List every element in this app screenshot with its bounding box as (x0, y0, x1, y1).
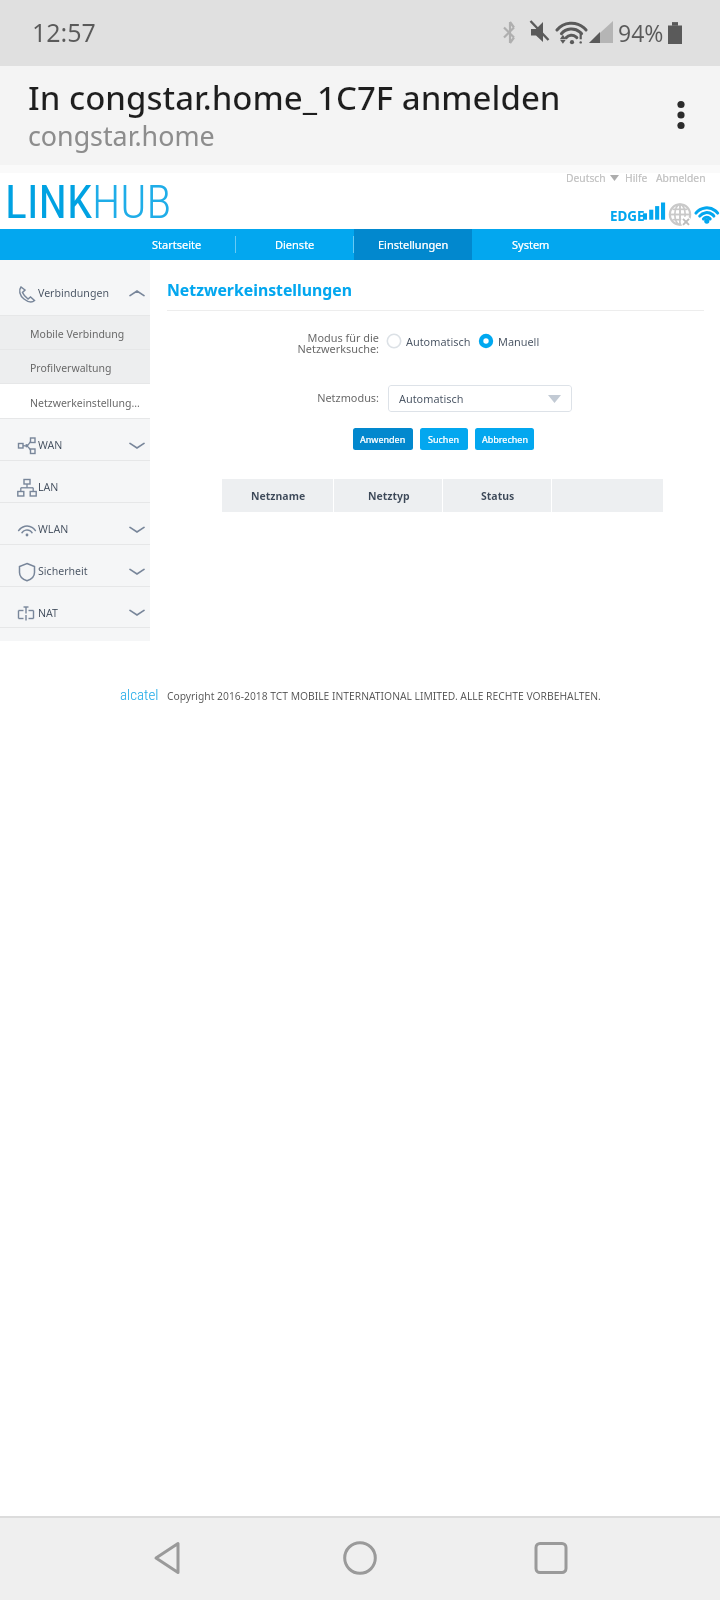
button[interactable]: System (472, 229, 590, 260)
button[interactable]: LAN (0, 461, 150, 503)
staticText: Netzwerkeinstellungen (167, 279, 352, 301)
staticText: Einstellungen (378, 237, 449, 252)
button[interactable]: Profilverwaltung (0, 350, 150, 384)
staticText: LAN (38, 480, 59, 494)
staticText: alcatel (120, 686, 159, 704)
staticText: Dienste (275, 237, 315, 252)
button[interactable]: Automatisch (386, 333, 471, 349)
staticText: HUB (92, 175, 172, 229)
button[interactable]: Mobile Verbindung (0, 316, 150, 350)
staticText: System (512, 237, 550, 252)
staticText: Status (481, 489, 515, 503)
staticText: Sicherheit (38, 564, 88, 578)
button[interactable]: Automatisch (388, 385, 572, 412)
button[interactable]: NAT (0, 587, 150, 628)
staticText: Anwenden (360, 433, 406, 445)
button[interactable]: Deutsch (566, 171, 606, 185)
staticText: Netzmodus: (289, 390, 379, 405)
button[interactable]: Abbrechen (475, 428, 534, 450)
staticText: Netzname (251, 489, 306, 503)
staticText: NAT (38, 606, 58, 620)
button[interactable]: Back (120, 1516, 216, 1600)
button[interactable]: WLAN (0, 503, 150, 545)
button[interactable]: Anwenden (353, 428, 413, 450)
staticText: Netztyp (368, 489, 410, 503)
staticText: WAN (38, 438, 63, 452)
button[interactable]: Verbindungen (0, 260, 150, 316)
staticText: congstar.home (28, 117, 215, 154)
staticText: Profilverwaltung (30, 361, 112, 375)
button[interactable]: More options (651, 86, 711, 146)
staticText: 94% (618, 17, 664, 48)
button[interactable]: Startseite (118, 229, 236, 260)
staticText: Suchen (428, 433, 460, 445)
staticText: Mobile Verbindung (30, 327, 125, 341)
button[interactable]: Dienste (236, 229, 354, 260)
button[interactable]: Abmelden (656, 171, 706, 185)
staticText: Netzwerkeinstellung… (30, 396, 140, 410)
button[interactable]: Netzwerkeinstellung… (0, 384, 150, 419)
staticText: Manuell (498, 334, 540, 349)
staticText: Verbindungen (38, 286, 109, 300)
button[interactable]: Hilfe (625, 171, 648, 185)
button[interactable]: WAN (0, 419, 150, 461)
staticText: Automatisch (406, 334, 471, 349)
button[interactable]: Sicherheit (0, 545, 150, 587)
button[interactable]: Manuell (478, 333, 540, 349)
staticText: EDGE (610, 207, 645, 225)
staticText: Automatisch (399, 391, 464, 406)
button[interactable]: Recent apps (503, 1516, 599, 1600)
button[interactable]: Suchen (420, 428, 468, 450)
staticText: 12:57 (32, 15, 96, 49)
button[interactable]: Einstellungen (354, 229, 472, 260)
staticText: Abbrechen (482, 433, 528, 445)
staticText: Copyright 2016-2018 TCT MOBILE INTERNATI… (167, 689, 601, 703)
staticText: In congstar.home_1C7F anmelden (28, 75, 561, 120)
button[interactable]: Home (312, 1516, 408, 1600)
staticText: Startseite (152, 237, 202, 252)
staticText: LINK (5, 175, 92, 229)
staticText: Modus für die Netzwerksuche: (289, 330, 379, 357)
staticText: WLAN (38, 522, 69, 536)
